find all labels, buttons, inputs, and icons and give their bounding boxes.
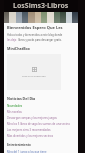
staticText: Mis novelas bbox=[7, 110, 22, 114]
button[interactable]: Mas divertidos y los mejores vecinos bbox=[7, 134, 75, 138]
staticText: Mira los 5 libros de saga los suenos de … bbox=[7, 122, 70, 126]
button[interactable]: Mira los 5 libros de saga los suenos de … bbox=[7, 122, 75, 126]
staticText: Novedades bbox=[7, 104, 23, 108]
button[interactable]: Descargar compas y los mejores juegos bbox=[7, 116, 75, 120]
staticText: Entretenimiento bbox=[7, 143, 31, 147]
staticText: Bienvenidos Espero Que Les Guste bbox=[7, 25, 75, 30]
button[interactable]: Contenido no disponible bbox=[7, 54, 61, 90]
staticText: libros y packs para descargar gratis. bbox=[18, 38, 62, 42]
button[interactable]: LosSims3 Libros inicio bbox=[4, 0, 78, 12]
button[interactable]: Banner del sitio bbox=[4, 12, 78, 23]
staticText: Plug-in no soportado bbox=[22, 74, 46, 77]
button[interactable]: Mis novelas bbox=[7, 110, 75, 114]
button[interactable]: Los mejores sims 3 recomendados bbox=[7, 128, 75, 132]
staticText: Mira del 1 juego a los que tiene bbox=[7, 150, 47, 153]
button[interactable]: Mira del 1 juego a los que tiene bbox=[7, 150, 75, 153]
staticText: Los mejores sims 3 recomendados bbox=[7, 128, 51, 132]
staticText: Noticias Del Dia bbox=[7, 96, 36, 101]
staticText: MiniChatBox bbox=[7, 46, 30, 51]
staticText: LosSims3·Libros bbox=[13, 1, 69, 11]
staticText: Descargar compas y los mejores juegos bbox=[7, 116, 57, 120]
staticText: Hola a todos y bienvenidos a este blog d… bbox=[7, 33, 63, 37]
staticText: les dejo bbox=[7, 38, 17, 42]
button[interactable]: Novedades bbox=[7, 104, 75, 108]
staticText: Mas divertidos y los mejores vecinos bbox=[7, 134, 53, 138]
